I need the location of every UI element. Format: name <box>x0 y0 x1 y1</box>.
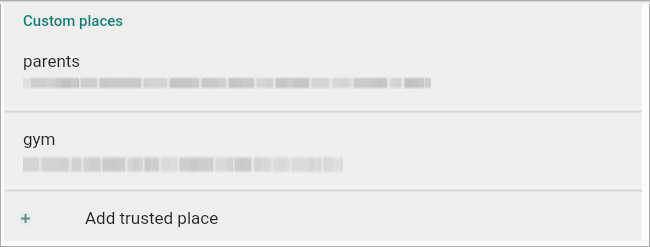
staticText: Custom places <box>23 12 124 30</box>
button[interactable]: gym <box>4 114 642 183</box>
button[interactable]: Custom places <box>23 12 124 30</box>
button[interactable]: parents <box>4 39 642 104</box>
staticText: Add trusted place <box>85 208 219 228</box>
staticText: gym <box>23 129 56 149</box>
staticText: parents <box>23 51 81 71</box>
button[interactable]: Add trusted place <box>4 196 642 240</box>
other: Add trusted place <box>4 196 85 240</box>
